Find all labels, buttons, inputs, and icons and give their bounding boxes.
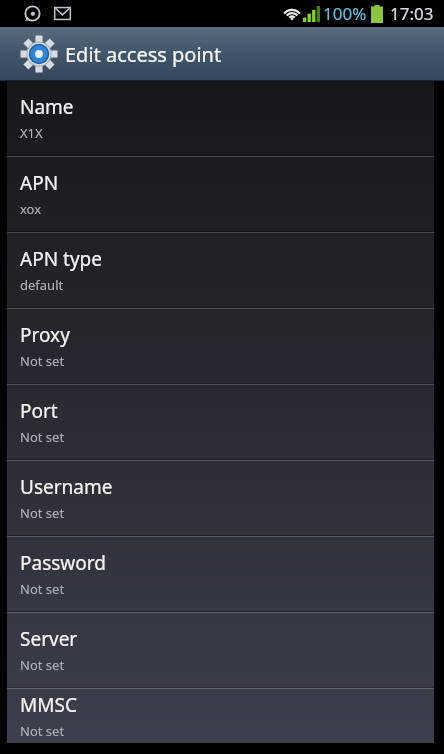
staticText: APN type	[20, 246, 102, 272]
button[interactable]: Port	[7, 385, 434, 459]
staticText: 100%	[323, 2, 367, 25]
staticText: Not set	[20, 722, 65, 740]
staticText: xox	[20, 200, 42, 218]
button[interactable]: Proxy	[7, 309, 434, 383]
staticText: APN	[20, 170, 59, 196]
button[interactable]: APN type	[7, 233, 434, 307]
button[interactable]: Username	[7, 461, 434, 535]
staticText: Not set	[20, 656, 65, 674]
staticText: default	[20, 276, 64, 294]
staticText: Username	[20, 474, 113, 500]
staticText: Server	[20, 626, 78, 652]
staticText: Port	[20, 398, 58, 424]
button[interactable]: MMSC	[7, 689, 434, 743]
button[interactable]: Name	[7, 81, 434, 155]
staticText: Proxy	[20, 322, 70, 348]
button[interactable]: Edit access point	[0, 27, 444, 81]
staticText: Not set	[20, 580, 65, 598]
staticText: MMSC	[20, 692, 77, 718]
button[interactable]: APN	[7, 157, 434, 231]
staticText: X1X	[20, 124, 43, 142]
button[interactable]: Server	[7, 613, 434, 687]
button[interactable]: Password	[7, 537, 434, 611]
staticText: Password	[20, 550, 106, 576]
staticText: 17:03	[390, 2, 434, 25]
staticText: Not set	[20, 504, 65, 522]
staticText: Not set	[20, 428, 65, 446]
staticText: Edit access point	[65, 41, 222, 68]
staticText: Not set	[20, 352, 65, 370]
staticText: Name	[20, 94, 74, 120]
